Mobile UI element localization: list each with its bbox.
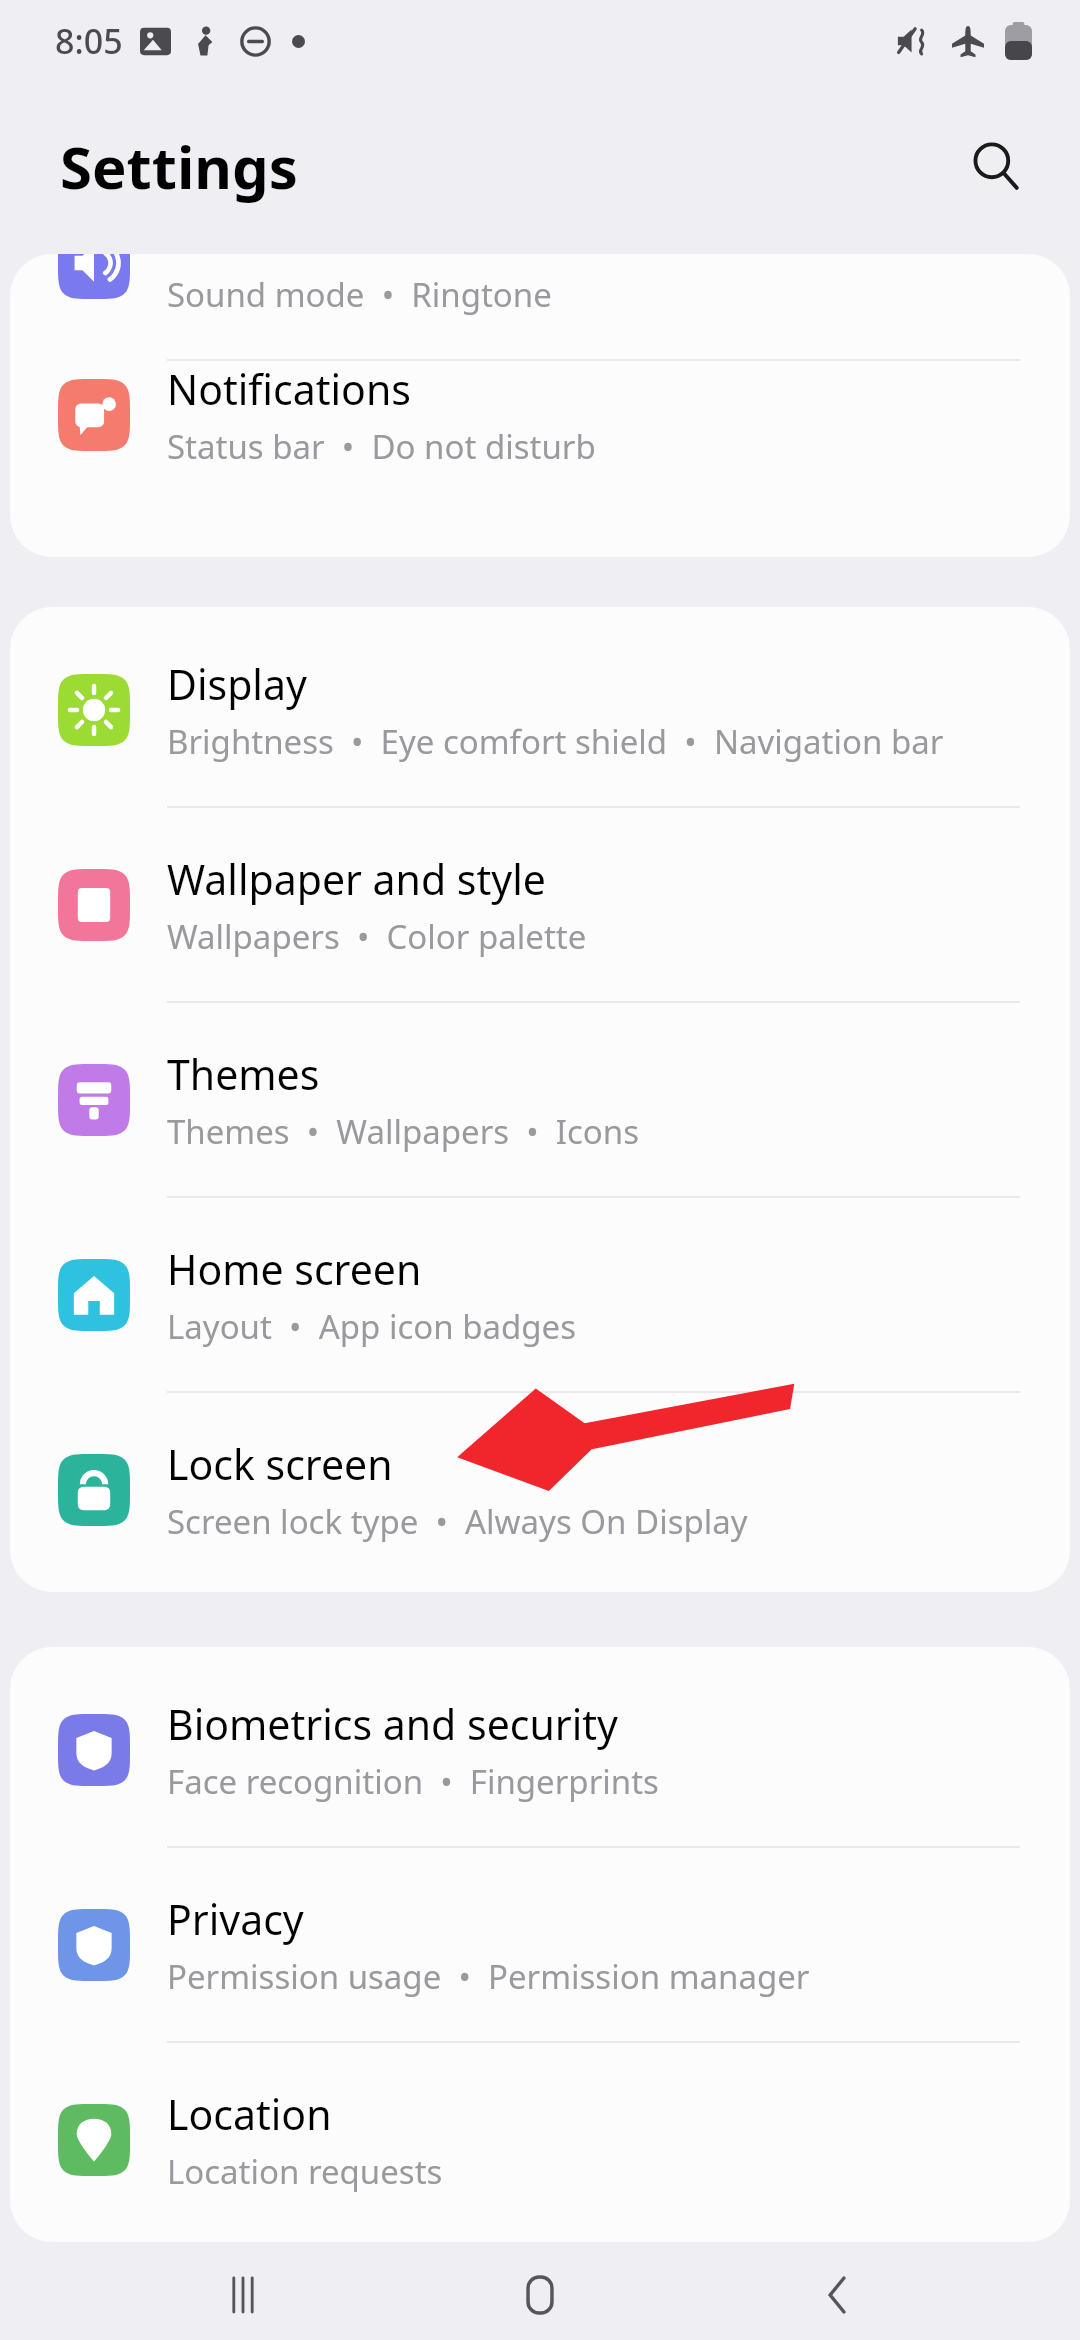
staticText: Permission usage • Permission manager [167,1954,810,1999]
staticText: Biometrics and security [167,1696,618,1752]
button[interactable]: Home screen [10,1198,1070,1391]
staticText: Screen lock type • Always On Display [167,1499,748,1544]
staticText: Location [167,2086,332,2142]
staticText: Wallpapers • Color palette [167,914,587,959]
button[interactable]: Recents [188,2250,298,2340]
button[interactable]: Biometrics and security [10,1653,1070,1846]
button[interactable]: Display [10,613,1070,806]
staticText: Themes [167,1046,320,1102]
button[interactable]: Lock screen [10,1393,1070,1586]
button[interactable]: Wallpaper and style [10,808,1070,1001]
staticText: Layout • App icon badges [167,1304,577,1349]
staticText: Location requests [167,2149,443,2194]
staticText: Themes • Wallpapers • Icons [167,1109,639,1154]
staticText: Lock screen [167,1436,393,1492]
staticText: Face recognition • Fingerprints [167,1759,659,1804]
button[interactable]: Notifications [10,361,1070,469]
button[interactable]: Privacy [10,1848,1070,2041]
staticText: Sound mode • Ringtone [167,272,552,317]
staticText: Notifications [167,361,411,417]
staticText: 8:05 [55,18,123,64]
staticText: Privacy [167,1891,304,1947]
staticText: Home screen [167,1241,422,1297]
button[interactable]: Themes [10,1003,1070,1196]
staticText: Brightness • Eye comfort shield • Naviga… [167,719,944,764]
staticText: Wallpaper and style [167,851,546,907]
staticText: Display [167,656,307,712]
button[interactable]: Home [485,2250,595,2340]
button[interactable]: Location [10,2043,1070,2236]
staticText: Status bar • Do not disturb [167,424,596,469]
staticText: Settings [60,127,298,206]
button[interactable]: Back [783,2250,893,2340]
button[interactable]: Search [954,124,1038,208]
button[interactable]: Sounds and vibration [10,254,1070,359]
